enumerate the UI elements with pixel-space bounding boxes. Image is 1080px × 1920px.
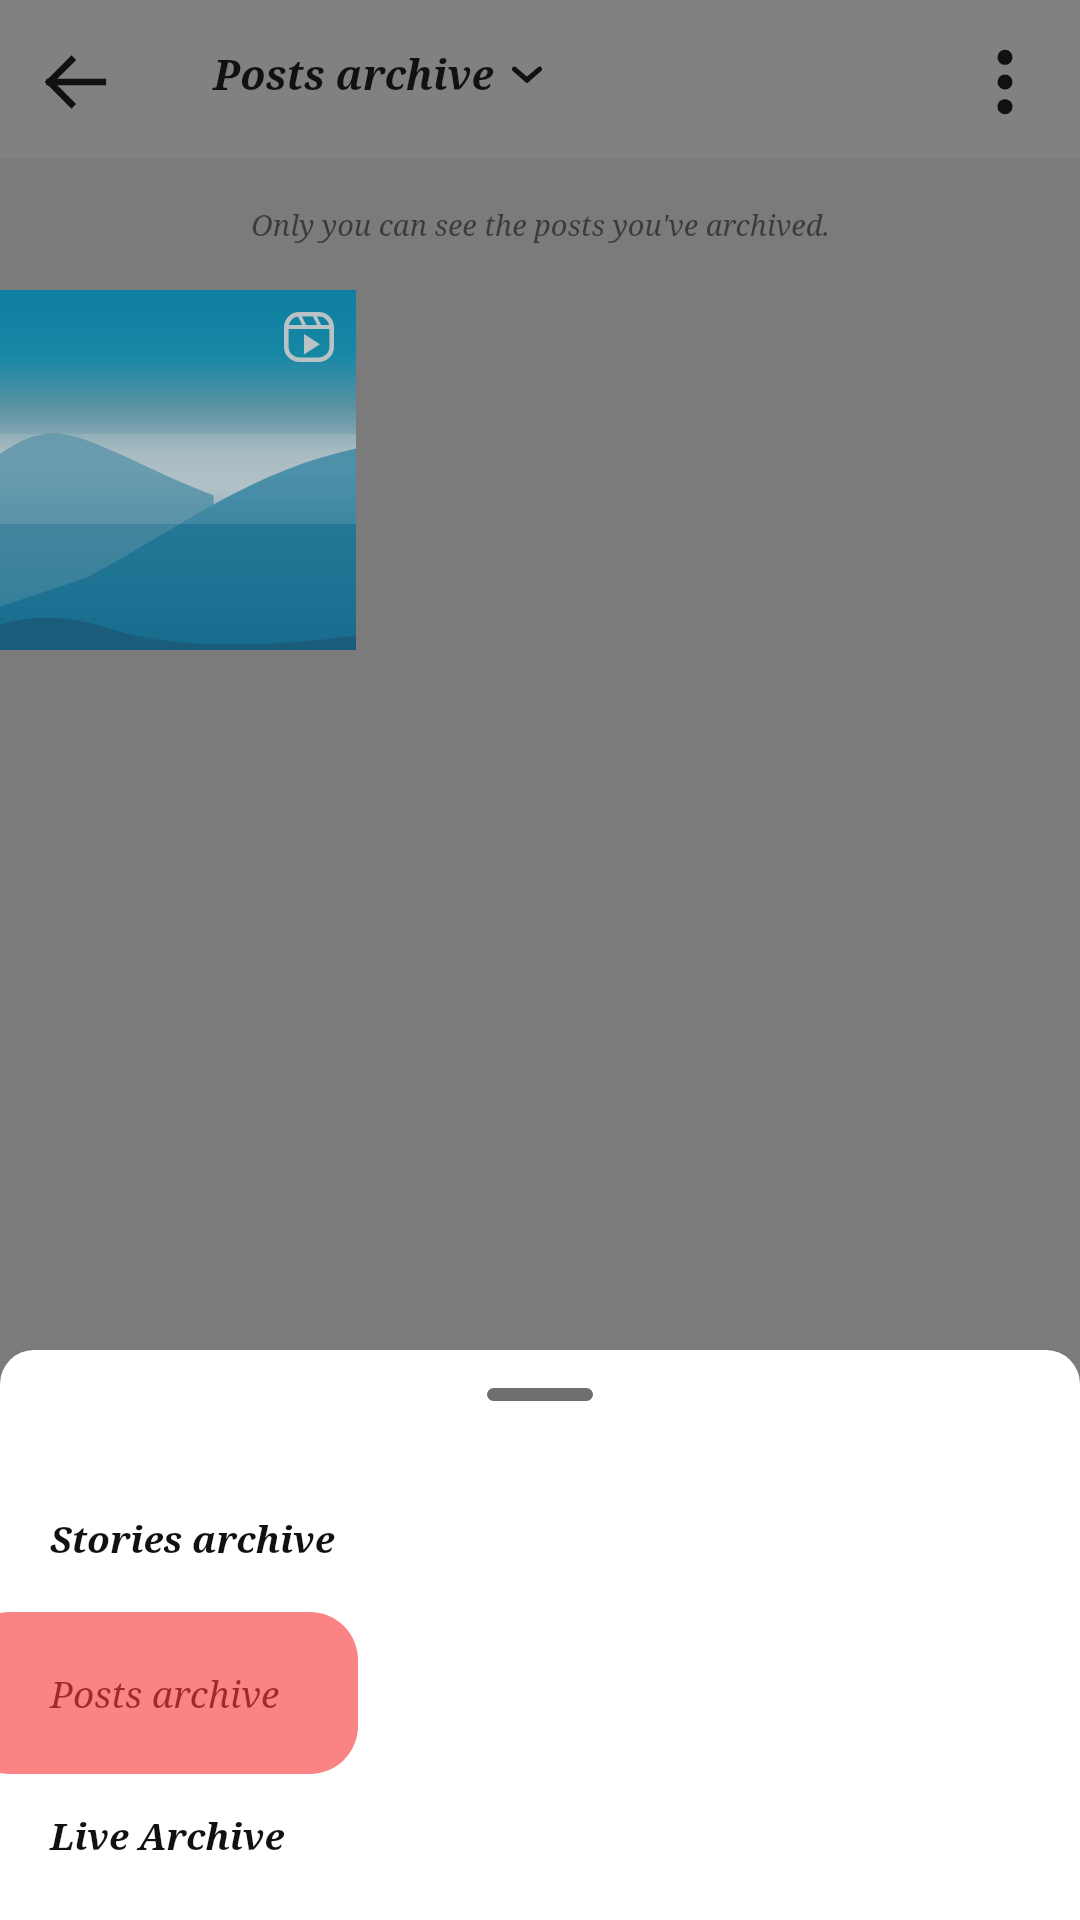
staticText: Posts archive	[50, 1668, 280, 1718]
button[interactable]: Live Archive	[0, 1792, 1080, 1878]
button[interactable]	[0, 290, 356, 650]
staticText: Only you can see the posts you've archiv…	[251, 205, 830, 244]
staticText: Live Archive	[50, 1810, 285, 1860]
button[interactable]: Posts archive	[0, 1612, 358, 1774]
button[interactable]: Stories archive	[0, 1495, 1080, 1581]
button[interactable]: Posts archive	[213, 46, 544, 102]
staticText: Stories archive	[50, 1513, 335, 1563]
button[interactable]: More options	[960, 37, 1050, 127]
staticText: Posts archive	[213, 46, 494, 102]
button[interactable]: Back	[30, 37, 120, 127]
